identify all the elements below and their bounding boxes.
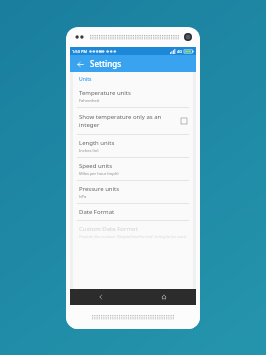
staticText: Settings [90,58,122,69]
button[interactable]: Home [157,290,171,304]
staticText: Provide the custom 'SimpleDateFormat' st… [79,234,187,239]
staticText: Temperature units [79,89,131,97]
staticText: Custom Date Format [79,225,138,233]
button[interactable]: Length units [73,135,193,157]
button[interactable]: Show temperature only as an integer [73,108,193,134]
button[interactable]: Temperature units [73,85,193,107]
button[interactable]: Navigate up [74,58,86,70]
staticText: hPa [79,194,87,199]
button[interactable]: Date Format [73,204,193,220]
staticText: Show temperature only as an integer [79,113,181,129]
button[interactable]: Custom Date Format [73,221,193,243]
button[interactable]: Pressure units [73,181,193,203]
staticText: Date Format [79,208,115,216]
button[interactable]: Speed units [73,158,193,180]
staticText: Speed units [79,162,113,170]
staticText: Units [79,76,92,83]
staticText: Fahrenheit [79,98,100,103]
staticText: 1:50 PM [72,49,88,54]
staticText: Inches (in) [79,148,99,153]
button[interactable]: Back [94,290,108,304]
staticText: Length units [79,139,115,147]
staticText: 4G [177,49,183,54]
staticText: Miles per hour (mph) [79,171,119,176]
staticText: Pressure units [79,185,120,193]
